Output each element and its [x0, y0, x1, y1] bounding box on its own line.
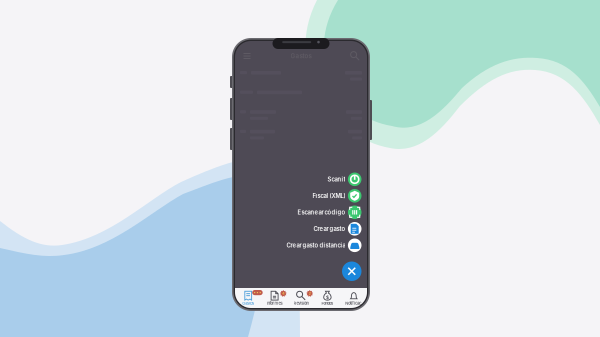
staticText: Escanear código [297, 209, 345, 216]
staticText: Informes [267, 301, 283, 306]
staticText: Crear gasto [313, 225, 345, 232]
staticText: Gastos [242, 301, 254, 306]
button[interactable]: Search [347, 50, 363, 62]
button[interactable]: 2 [288, 291, 314, 306]
button[interactable]: Notificac. [341, 291, 367, 306]
staticText: Scanit [327, 176, 345, 183]
staticText: $ [326, 294, 329, 301]
button[interactable]: Menu [239, 50, 255, 62]
button[interactable]: Fiscal (XML) [235, 189, 361, 203]
button[interactable]: Escanear código [235, 205, 361, 219]
staticText: Revisión [293, 301, 308, 306]
staticText: 4 [282, 291, 284, 296]
button[interactable]: Gastos [235, 291, 261, 306]
staticText: Notificac. [345, 301, 362, 306]
staticText: Crear gasto distancia [286, 242, 345, 249]
staticText: Fiscal (XML) [312, 192, 345, 199]
button[interactable]: Scanit [235, 172, 361, 186]
button[interactable]: Crear gasto distancia [235, 238, 361, 252]
staticText: 2 [309, 291, 311, 296]
staticText: Fondos [321, 301, 333, 306]
button[interactable]: Crear gasto [235, 222, 361, 236]
button[interactable]: 4 [261, 291, 288, 306]
button[interactable]: Close menu [342, 255, 361, 281]
button[interactable]: $ [314, 291, 341, 306]
staticText: Gastos [290, 52, 311, 60]
